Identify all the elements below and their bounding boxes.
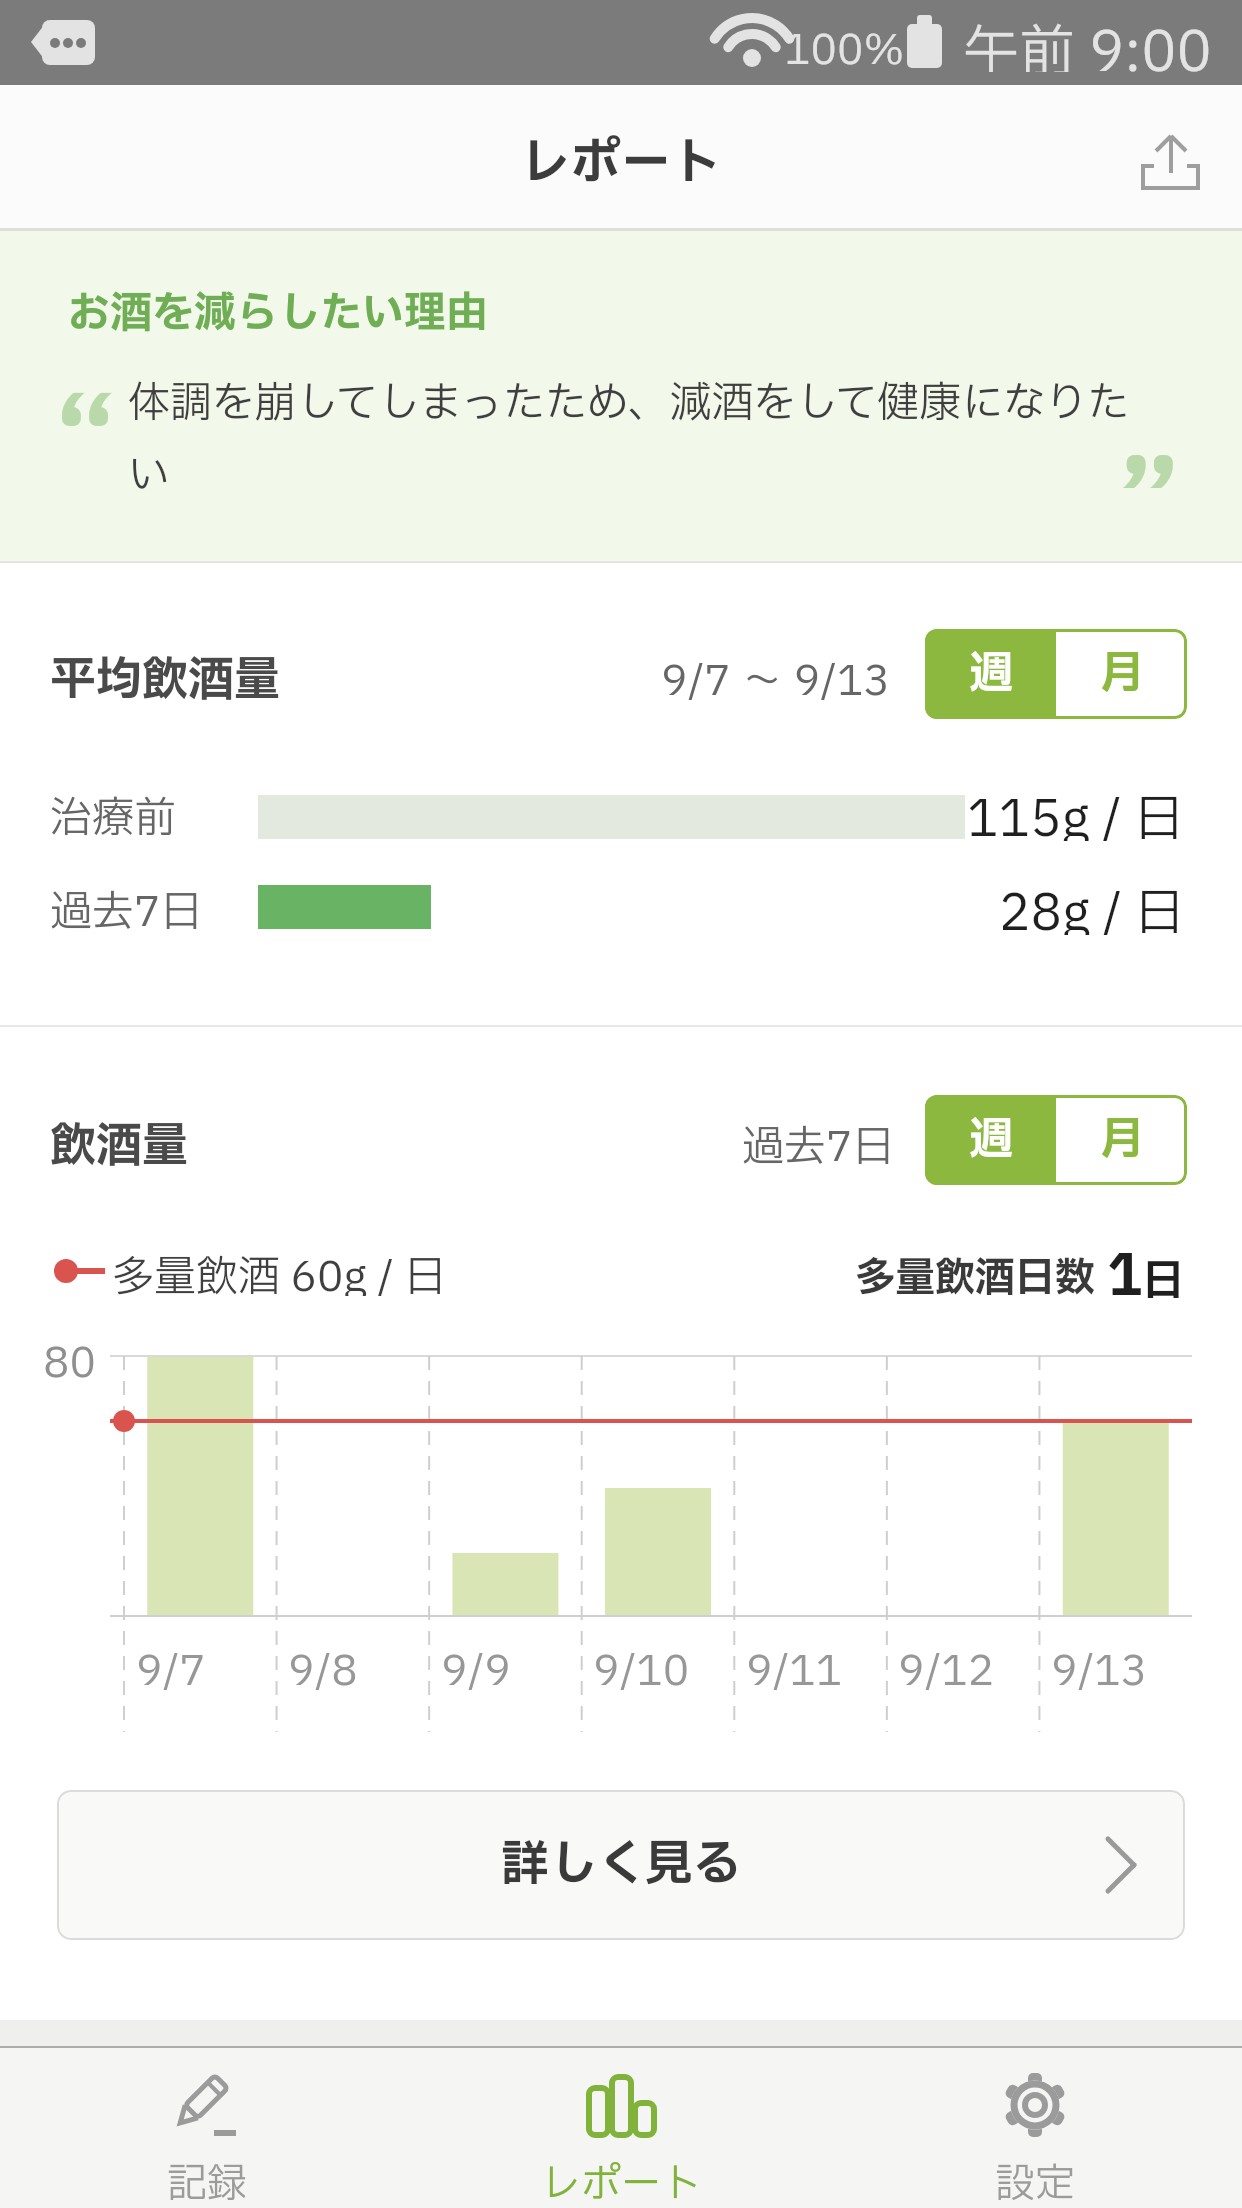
staticText: 9/12 xyxy=(898,1640,995,1690)
staticText: 過去7日 xyxy=(50,881,203,931)
button[interactable]: 設定 xyxy=(828,2048,1242,2208)
staticText: 設定 xyxy=(995,2155,1075,2208)
staticText: 月 xyxy=(1100,641,1144,707)
staticText: 9/13 xyxy=(1051,1640,1148,1690)
staticText: 多量飲酒日数 xyxy=(855,1249,1095,1297)
button[interactable]: 週 xyxy=(925,1095,1056,1185)
staticText: 100% xyxy=(784,19,905,65)
button[interactable]: 月 xyxy=(1056,629,1187,719)
staticText: 午前 9:00 xyxy=(963,12,1212,72)
staticText: 飲酒量 xyxy=(50,1112,188,1168)
staticText: ” xyxy=(1118,425,1180,505)
staticText: 9/9 xyxy=(441,1640,511,1690)
button[interactable]: 月 xyxy=(1056,1095,1187,1185)
staticText: 9/7 ～ 9/13 xyxy=(661,650,890,700)
staticText: 80 xyxy=(43,1332,96,1380)
button[interactable] xyxy=(0,231,1242,561)
staticText: 9/7 xyxy=(136,1640,206,1690)
staticText: 9/11 xyxy=(746,1640,843,1690)
staticText: “ xyxy=(55,362,117,442)
button[interactable] xyxy=(1120,115,1220,215)
staticText: 詳しく見る xyxy=(501,1829,742,1901)
button[interactable]: 記録 xyxy=(0,2048,414,2208)
staticText: 過去7日 xyxy=(742,1116,895,1164)
staticText: レポート xyxy=(541,2155,701,2208)
staticText: お酒を減らしたい理由 xyxy=(68,282,489,334)
staticText: 平均飲酒量 xyxy=(50,646,280,702)
staticText: 月 xyxy=(1100,1107,1144,1173)
staticText: 1日 xyxy=(1107,1236,1185,1302)
staticText: 週 xyxy=(969,641,1013,707)
staticText: 115g / 日 xyxy=(967,783,1185,841)
staticText: 記録 xyxy=(167,2155,247,2208)
staticText: 体調を崩してしまったため、減酒をして健康になりたい xyxy=(128,372,1168,507)
button[interactable]: 週 xyxy=(925,629,1056,719)
button[interactable]: 詳しく見る xyxy=(57,1790,1185,1940)
staticText: 9/10 xyxy=(593,1640,690,1690)
staticText: レポート xyxy=(521,126,721,188)
staticText: 治療前 xyxy=(50,787,177,837)
staticText: 9/8 xyxy=(288,1640,358,1690)
staticText: 多量飲酒 60g / 日 xyxy=(112,1246,447,1296)
button[interactable]: レポート xyxy=(414,2048,828,2208)
staticText: 週 xyxy=(969,1107,1013,1173)
staticText: 28g / 日 xyxy=(999,877,1185,935)
